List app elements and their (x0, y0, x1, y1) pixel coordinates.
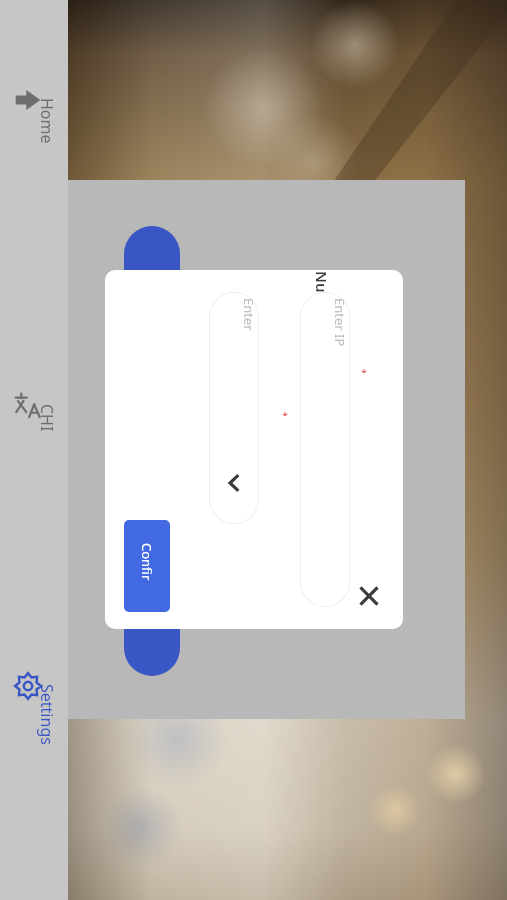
button[interactable]: Enter IP Address (300, 292, 350, 607)
button[interactable]: Close (348, 575, 390, 617)
staticText: CHI (36, 404, 58, 432)
button[interactable]: Confirm (124, 520, 170, 612)
button[interactable]: Home (0, 80, 68, 210)
staticText: Port Number (312, 270, 332, 332)
staticText: * (361, 365, 368, 373)
button[interactable]: CHI (0, 386, 68, 516)
staticText: Enter Port NO. (236, 298, 258, 348)
button[interactable]: Select port (217, 466, 251, 500)
staticText: Confirm (138, 543, 156, 589)
staticText: Enter IP Address (327, 298, 349, 348)
staticText: Settings (36, 684, 58, 745)
staticText: * (282, 408, 289, 416)
button[interactable]: Enter Port NO. (209, 292, 259, 524)
staticText: Home (36, 98, 58, 144)
button[interactable]: Settings (0, 666, 68, 796)
